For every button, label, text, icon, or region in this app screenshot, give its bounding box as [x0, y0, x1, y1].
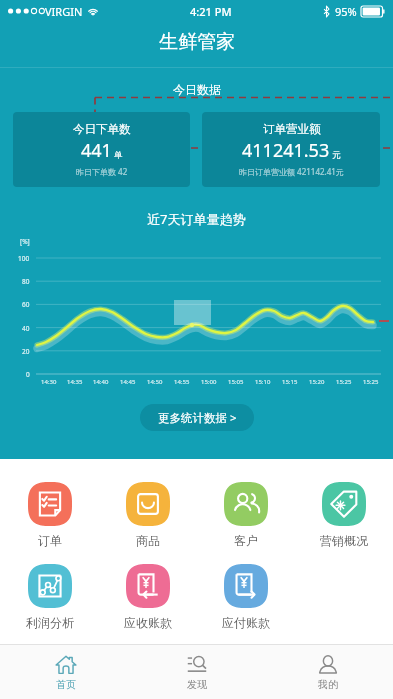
button[interactable]: 更多统计数据 >	[140, 404, 254, 431]
staticText: 今日下单数	[73, 122, 131, 136]
staticText: 14:35	[67, 378, 83, 386]
button[interactable]: 商品	[99, 482, 197, 548]
staticText: 14:50	[147, 378, 163, 386]
button[interactable]: 客户	[197, 482, 295, 548]
staticText: 20	[22, 347, 30, 356]
staticText: 14:55	[174, 378, 190, 386]
button[interactable]: 首页	[0, 645, 131, 699]
staticText: 4:21 PM	[190, 4, 232, 19]
staticText: [%]	[20, 237, 30, 246]
staticText: 15:25	[336, 378, 352, 386]
staticText: 订单营业额	[263, 122, 321, 136]
staticText: 100	[18, 254, 30, 263]
staticText: 订单	[38, 533, 62, 548]
staticText: 40	[22, 324, 30, 333]
staticText: 441	[81, 138, 112, 163]
button[interactable]: 订单	[0, 482, 99, 548]
staticText: 今日数据	[173, 82, 221, 97]
staticText: 营销概况	[320, 533, 368, 548]
staticText: 15:15	[282, 378, 298, 386]
button[interactable]: 应付账款	[197, 564, 295, 630]
staticText: VIRGIN	[45, 4, 83, 19]
staticText: 昨日订单营业额 421142.41元	[239, 166, 344, 177]
staticText: 14:30	[41, 378, 57, 386]
staticText: 利润分析	[26, 615, 74, 630]
staticText: 商品	[136, 533, 160, 548]
staticText: 15:00	[201, 378, 217, 386]
staticText: 60	[22, 300, 30, 309]
staticText: 0	[26, 370, 30, 379]
staticText: 近7天订单量趋势	[147, 210, 246, 228]
staticText: 客户	[234, 533, 258, 548]
button[interactable]: 应收账款	[99, 564, 197, 630]
staticText: 411241.53	[242, 138, 330, 163]
staticText: 15:10	[255, 378, 271, 386]
staticText: 首页	[56, 678, 76, 691]
staticText: 单	[114, 150, 123, 161]
staticText: 80	[22, 277, 30, 286]
button[interactable]: 我的	[262, 645, 393, 699]
button[interactable]: 今日下单数	[13, 112, 190, 187]
staticText: 元	[332, 150, 341, 161]
staticText: 应收账款	[124, 615, 172, 630]
staticText: 发现	[187, 678, 207, 691]
staticText: 我的	[318, 678, 338, 691]
staticText: 15:20	[309, 378, 325, 386]
button[interactable]: 发现	[131, 645, 262, 699]
staticText: 应付账款	[222, 615, 270, 630]
button[interactable]: 订单营业额	[202, 112, 380, 187]
button[interactable]: 利润分析	[0, 564, 99, 630]
staticText: 生鲜管家	[159, 30, 235, 54]
staticText: 14:40	[93, 378, 109, 386]
staticText: 更多统计数据 >	[158, 410, 237, 426]
staticText: 14:45	[120, 378, 136, 386]
button[interactable]: 营销概况	[295, 482, 393, 548]
staticText: 昨日下单数 42	[76, 166, 128, 177]
staticText: 15:25	[363, 378, 379, 386]
staticText: 15:05	[228, 378, 244, 386]
staticText: 95%	[335, 4, 357, 19]
